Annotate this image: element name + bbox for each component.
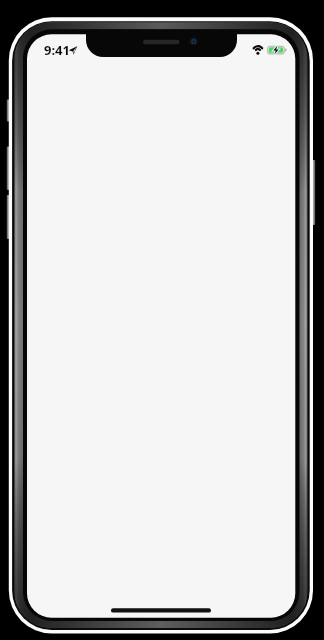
staticText: 9:41 <box>44 41 70 59</box>
